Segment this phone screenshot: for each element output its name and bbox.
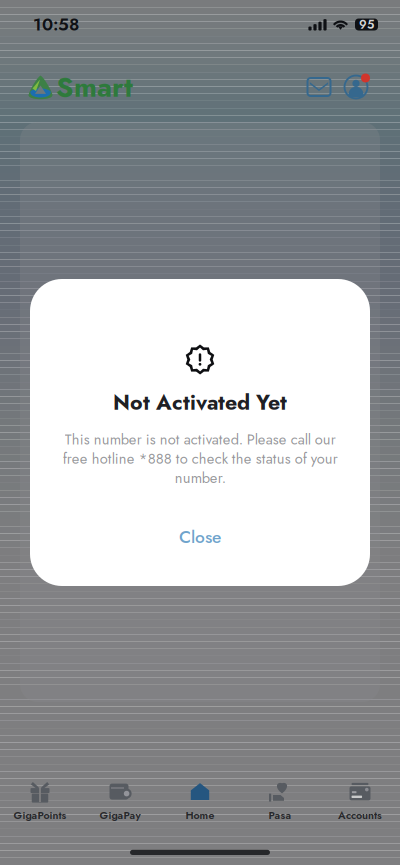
staticText: Pasa bbox=[268, 808, 291, 823]
staticText: Not Activated Yet bbox=[113, 387, 287, 418]
staticText: Smart bbox=[56, 67, 133, 107]
staticText: 10:58 bbox=[33, 12, 79, 37]
button[interactable]: Pasa bbox=[240, 778, 320, 826]
staticText: 95 bbox=[359, 16, 374, 33]
button[interactable]: GigaPoints bbox=[0, 778, 80, 826]
button[interactable]: GigaPay bbox=[80, 778, 160, 826]
button[interactable]: Account bbox=[342, 73, 370, 101]
button[interactable]: Home bbox=[160, 778, 240, 826]
button[interactable]: Smart bbox=[27, 67, 133, 107]
staticText: Accounts bbox=[338, 808, 382, 823]
button[interactable]: Messages bbox=[306, 76, 332, 98]
staticText: Close bbox=[179, 524, 221, 549]
button[interactable]: Accounts bbox=[320, 778, 400, 826]
staticText: GigaPay bbox=[99, 808, 140, 823]
staticText: This number is not activated. Please cal… bbox=[62, 429, 337, 488]
button[interactable]: Close bbox=[115, 517, 285, 557]
staticText: GigaPoints bbox=[13, 808, 66, 823]
staticText: Home bbox=[185, 808, 214, 823]
